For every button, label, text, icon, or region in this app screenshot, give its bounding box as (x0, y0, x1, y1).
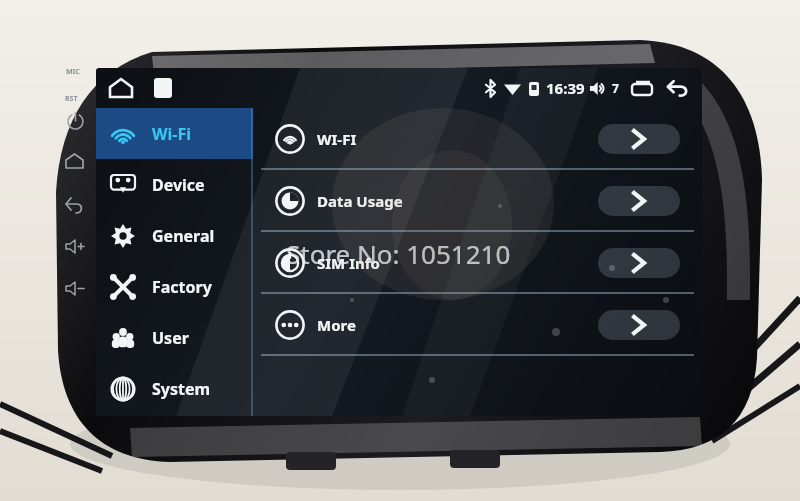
button[interactable]: Data Usage (253, 170, 702, 232)
button[interactable]: Back (664, 75, 692, 101)
staticText: MIC (66, 67, 80, 77)
button[interactable]: System (96, 363, 253, 414)
staticText: WI-FI (317, 129, 357, 149)
staticText: 7 (612, 80, 619, 96)
button[interactable]: Recent apps (146, 71, 180, 105)
button[interactable]: Home (104, 71, 138, 105)
staticText: SIM Info (317, 253, 380, 273)
button[interactable]: Factory (96, 261, 253, 312)
staticText: RST (65, 94, 78, 104)
staticText: 16:39 (546, 78, 585, 98)
staticText: Data Usage (317, 191, 403, 211)
staticText: General (152, 225, 215, 247)
button[interactable]: More (253, 294, 702, 356)
staticText: Store No: 1051210 (286, 236, 511, 271)
button[interactable]: Device (96, 159, 253, 210)
button[interactable]: User (96, 312, 253, 363)
staticText: System (152, 378, 211, 400)
staticText: User (152, 327, 189, 349)
button[interactable]: Wi-Fi (96, 108, 253, 159)
staticText: Device (152, 174, 205, 196)
button[interactable]: General (96, 210, 253, 261)
staticText: Factory (152, 276, 212, 298)
button[interactable]: WI-FI (253, 108, 702, 170)
staticText: More (317, 315, 356, 335)
staticText: Wi-Fi (152, 123, 191, 145)
button[interactable]: Screen off (628, 75, 656, 101)
button[interactable]: SIM Info (253, 232, 702, 294)
